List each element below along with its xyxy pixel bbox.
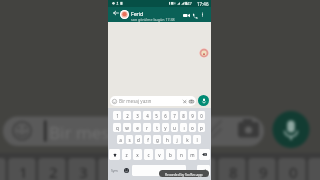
staticText: 4 [109,162,118,180]
button[interactable]: Call [189,10,200,21]
staticText: u [173,125,176,131]
button[interactable]: Symbols [108,164,121,177]
staticText: t [156,125,158,131]
button[interactable]: n [177,149,186,160]
button[interactable]: e [133,123,141,132]
staticText: 8 [182,113,185,119]
button[interactable]: t [153,123,160,132]
button[interactable]: Shift [109,149,120,160]
button[interactable]: 2 [123,111,131,120]
staticText: g [156,137,159,143]
button[interactable]: Backspace [199,149,210,160]
staticText: 3 [79,162,88,180]
button[interactable]: ı [180,123,187,132]
staticText: Recorded by Scr.Rec.app [165,172,203,176]
staticText: f [147,137,149,143]
staticText: e [136,125,139,131]
staticText: ı [183,125,185,131]
button[interactable]: Bir mesaj yazın [110,96,196,106]
staticText: j [176,137,178,143]
button[interactable]: 5 [153,111,160,120]
button[interactable]: o [189,123,196,132]
button[interactable]: b [166,149,175,160]
button[interactable]: m [188,149,197,160]
button[interactable]: u [171,123,178,132]
button[interactable]: 4 [143,111,151,120]
button[interactable]: Profile photo [120,10,129,19]
staticText: Ferid [131,10,144,17]
staticText: o [191,125,194,131]
staticText: 4 [146,113,149,119]
staticText: Bir mesaj yazın [119,98,152,104]
button[interactable]: w [123,123,131,132]
staticText: 6 [164,113,167,119]
button[interactable]: 1 [113,111,121,120]
staticText: Sym [111,168,118,173]
button[interactable]: 0 [198,111,205,120]
staticText: 5 [139,162,148,180]
button[interactable]: s [126,135,133,144]
button[interactable]: d [135,135,142,144]
button[interactable]: 3 [133,111,141,120]
staticText: d [137,137,140,143]
staticText: . [191,167,193,174]
button[interactable]: z [122,149,131,160]
staticText: son görülme bugün 17:38 [131,17,175,22]
staticText: 17:46 [197,1,209,7]
staticText: p [200,125,203,131]
button[interactable]: 7 [171,111,178,120]
button[interactable]: l [193,135,201,144]
staticText: 0 [289,162,298,180]
button[interactable]: Space [132,165,186,176]
button[interactable]: q [113,123,121,132]
staticText: h [166,137,169,143]
button[interactable]: v [155,149,164,160]
staticText: z [125,152,128,158]
staticText: Bir mesaj yazın [49,121,169,144]
staticText: 1 [116,113,119,119]
staticText: y [164,125,167,131]
staticText: 3 [136,113,139,119]
button[interactable]: c [144,149,153,160]
button[interactable]: f [144,135,151,144]
button[interactable]: a [117,135,124,144]
staticText: q [116,125,119,131]
staticText: 8 [229,162,238,180]
button[interactable]: j [173,135,181,144]
staticText: 9 [191,113,194,119]
staticText: 7 [199,162,208,180]
staticText: 7 [173,113,176,119]
staticText: w [125,125,129,131]
button[interactable]: 6 [162,111,169,120]
button[interactable]: More options [198,10,207,19]
button[interactable]: k [183,135,191,144]
staticText: c [147,152,150,158]
button[interactable]: r [143,123,151,132]
button[interactable]: h [163,135,171,144]
staticText: 0 [200,113,203,119]
button[interactable]: Enter [197,165,210,176]
button[interactable]: Voice message [198,95,209,106]
staticText: s [128,137,131,143]
button[interactable]: Period [187,164,196,177]
staticText: v [158,152,161,158]
staticText: 6 [169,162,178,180]
button[interactable]: p [198,123,205,132]
staticText: 1 [19,162,28,180]
button[interactable]: g [153,135,161,144]
button[interactable]: Video call [181,10,192,21]
button[interactable]: Back [112,9,120,17]
button[interactable]: Ferid [131,10,175,22]
staticText: k [186,137,189,143]
button[interactable]: x [133,149,142,160]
button[interactable]: 9 [189,111,196,120]
button[interactable]: Emoji [121,164,131,177]
staticText: m [190,152,195,158]
staticText: %47 [184,1,192,6]
button[interactable]: Sticker [199,48,209,58]
staticText: x [136,152,139,158]
button[interactable]: y [162,123,169,132]
staticText: r [146,125,148,131]
button[interactable]: 8 [180,111,187,120]
staticText: 9 [259,162,268,180]
